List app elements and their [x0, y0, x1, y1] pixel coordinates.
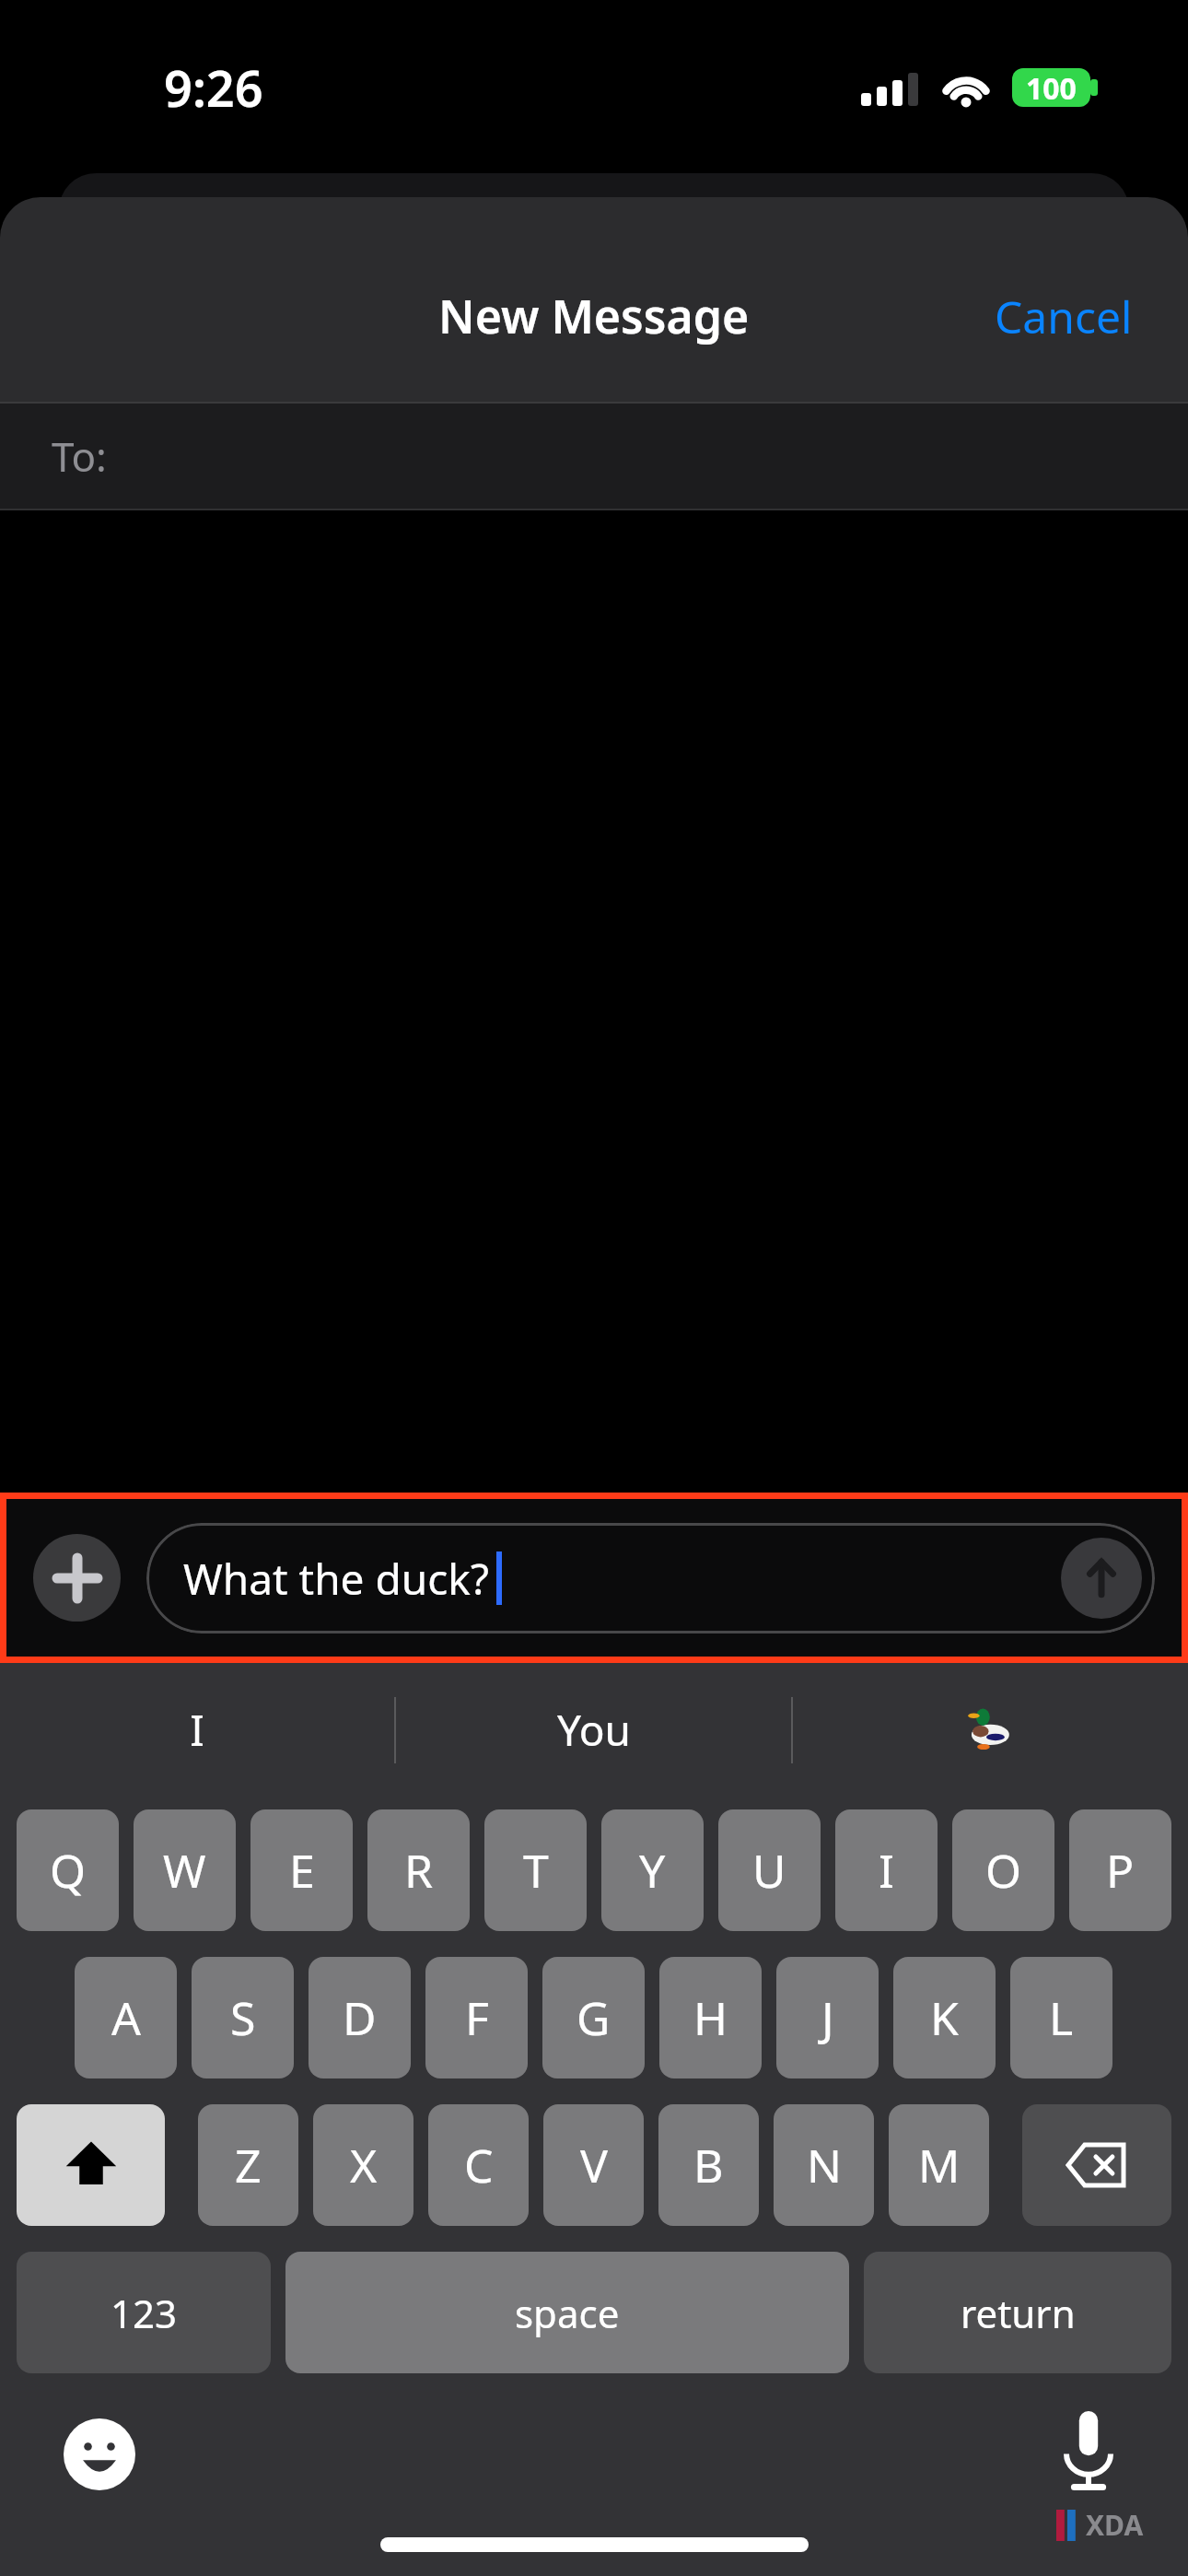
button[interactable]: K	[893, 1957, 996, 2078]
button[interactable]: J	[776, 1957, 879, 2078]
staticText: J	[821, 1986, 834, 2049]
button[interactable]: space	[285, 2252, 849, 2373]
button[interactable]: O	[952, 1809, 1054, 1931]
staticText: Y	[639, 1839, 666, 1902]
staticText: To:	[52, 428, 107, 484]
staticText: T	[523, 1839, 549, 1902]
staticText: R	[404, 1839, 434, 1902]
button[interactable]: D	[309, 1957, 411, 2078]
staticText: N	[807, 2134, 842, 2196]
button[interactable]: U	[718, 1809, 821, 1931]
button[interactable]: T	[484, 1809, 587, 1931]
staticText: F	[465, 1986, 489, 2049]
staticText: space	[515, 2287, 620, 2339]
staticText: X	[350, 2134, 378, 2196]
staticText: XDA	[1086, 2506, 1144, 2544]
button[interactable]: H	[659, 1957, 762, 2078]
button[interactable]: I	[0, 1663, 394, 1797]
staticText: B	[693, 2134, 724, 2196]
staticText: W	[163, 1839, 206, 1902]
button[interactable]: I	[835, 1809, 938, 1931]
staticText: G	[577, 1986, 611, 2049]
button[interactable]: You	[396, 1663, 791, 1797]
staticText: 9:26	[164, 53, 263, 122]
button[interactable]: Backspace	[1022, 2104, 1171, 2226]
button[interactable]: C	[428, 2104, 529, 2226]
button[interactable]: E	[250, 1809, 353, 1931]
staticText: I	[879, 1839, 894, 1902]
button[interactable]: X	[313, 2104, 413, 2226]
button[interactable]: V	[543, 2104, 644, 2226]
staticText: O	[985, 1839, 1022, 1902]
button[interactable]: P	[1069, 1809, 1171, 1931]
staticText: K	[930, 1986, 959, 2049]
button[interactable]: A	[75, 1957, 177, 2078]
button[interactable]: R	[367, 1809, 470, 1931]
button[interactable]: Cancel	[987, 277, 1140, 356]
staticText: You	[557, 1701, 631, 1759]
button[interactable]: W	[134, 1809, 236, 1931]
staticText: A	[111, 1986, 141, 2049]
button[interactable]: F	[425, 1957, 528, 2078]
button[interactable]: L	[1010, 1957, 1112, 2078]
button[interactable]: S	[192, 1957, 294, 2078]
button[interactable]: return	[864, 2252, 1171, 2373]
staticText: P	[1106, 1839, 1135, 1902]
staticText: 123	[111, 2287, 178, 2339]
button[interactable]: Add attachment	[33, 1534, 121, 1622]
staticText: S	[230, 1986, 256, 2049]
staticText: L	[1049, 1986, 1074, 2049]
staticText: Z	[235, 2134, 262, 2196]
staticText: New Message	[438, 285, 750, 347]
button[interactable]: To:	[0, 404, 1188, 509]
button[interactable]: 123	[17, 2252, 271, 2373]
staticText: V	[580, 2134, 608, 2196]
staticText: C	[464, 2134, 494, 2196]
staticText: H	[693, 1986, 728, 2049]
staticText: U	[752, 1839, 786, 1902]
button[interactable]: Emoji	[57, 2412, 142, 2497]
button[interactable]: What the duck?	[146, 1523, 1155, 1633]
button[interactable]: G	[542, 1957, 645, 2078]
staticText: Q	[50, 1839, 87, 1902]
staticText: I	[190, 1701, 204, 1759]
staticText: return	[961, 2287, 1076, 2339]
button[interactable]: Shift	[17, 2104, 165, 2226]
staticText: What the duck?	[183, 1550, 489, 1608]
button[interactable]: N	[774, 2104, 874, 2226]
button[interactable]: B	[658, 2104, 759, 2226]
button[interactable]: Dictate	[1046, 2408, 1131, 2493]
staticText: Cancel	[995, 287, 1133, 346]
button[interactable]	[793, 1663, 1188, 1797]
button[interactable]: Y	[601, 1809, 704, 1931]
button[interactable]: Z	[198, 2104, 298, 2226]
button[interactable]: M	[889, 2104, 989, 2226]
button[interactable]: Send	[1061, 1538, 1142, 1619]
button[interactable]: Q	[17, 1809, 119, 1931]
staticText: E	[289, 1839, 315, 1902]
staticText: D	[343, 1986, 377, 2049]
staticText: 100	[1026, 68, 1077, 107]
staticText: M	[918, 2134, 961, 2196]
